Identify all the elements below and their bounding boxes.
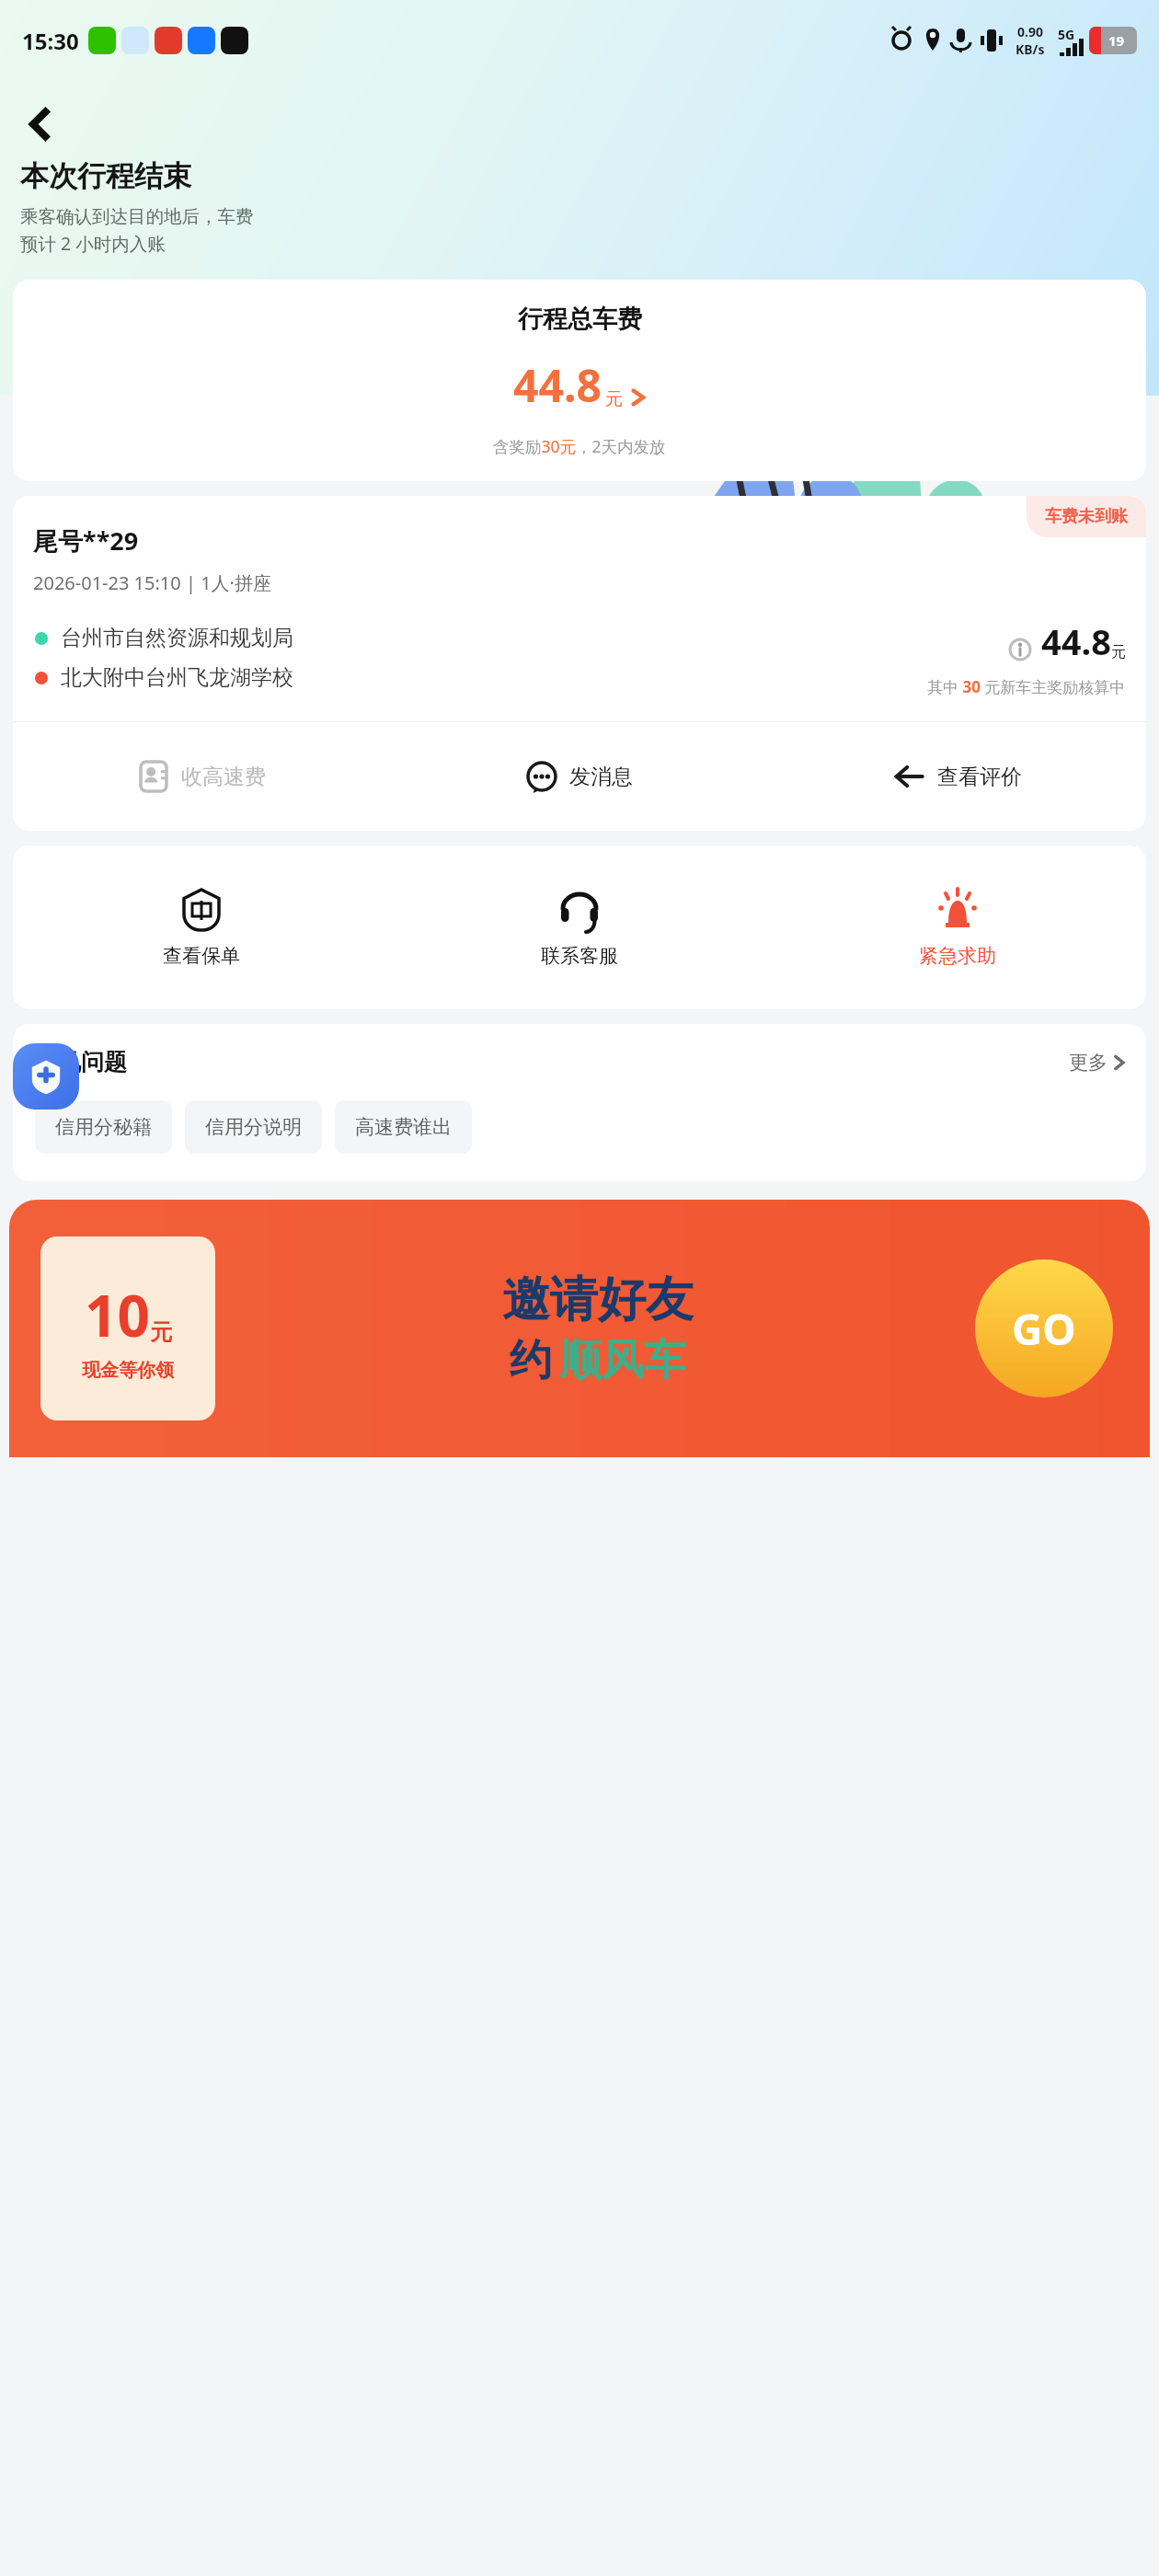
staticText: 联系客服	[541, 944, 618, 968]
button[interactable]: 安全中心	[13, 1043, 79, 1110]
staticText: 元	[1111, 643, 1126, 661]
button[interactable]: Back	[11, 96, 68, 153]
button[interactable]: 信用分秘籍	[35, 1100, 172, 1154]
button[interactable]: 查看保单	[13, 845, 390, 1009]
staticText: 行程总车费	[518, 304, 642, 335]
staticText: 15:30	[22, 26, 79, 56]
staticText: 信用分说明	[205, 1115, 302, 1139]
button[interactable]: 查看评价	[768, 722, 1146, 831]
button[interactable]: 高速费谁出	[335, 1100, 472, 1154]
staticText: 10	[85, 1276, 150, 1353]
staticText: 车费未到账	[1045, 506, 1128, 527]
staticText: 信用分秘籍	[55, 1115, 152, 1139]
staticText: 约	[510, 1334, 552, 1387]
staticText: 0.90	[1017, 23, 1043, 40]
button[interactable]: 紧急求助	[768, 845, 1146, 1009]
staticText: 44.8	[513, 355, 602, 415]
button[interactable]: 发消息	[390, 722, 768, 831]
staticText: 元	[150, 1318, 172, 1346]
staticText: GO	[1012, 1300, 1076, 1358]
staticText: 发消息	[569, 764, 633, 790]
staticText: 查看评价	[937, 764, 1022, 790]
staticText: 5G	[1058, 26, 1075, 43]
button[interactable]: 10	[9, 1200, 1150, 1457]
staticText: 常见问题	[35, 1048, 127, 1076]
button[interactable]: 收高速费	[13, 722, 390, 831]
staticText: 现金等你领	[82, 1359, 174, 1382]
staticText: 乘客确认到达目的地后，车费 预计 2 小时内入账	[20, 205, 254, 256]
staticText: 收高速费	[181, 764, 266, 790]
staticText: 北大附中台州飞龙湖学校	[61, 664, 293, 691]
staticText: 尾号**29	[33, 523, 139, 558]
staticText: 查看保单	[163, 944, 240, 968]
staticText: 其中 30 元新车主奖励核算中	[927, 676, 1126, 697]
staticText: 顺风车	[559, 1334, 686, 1387]
staticText: 邀请好友	[502, 1270, 694, 1330]
staticText: 含奖励30元，2天内发放	[493, 435, 666, 457]
staticText: 高速费谁出	[355, 1115, 452, 1139]
staticText: 本次行程结束	[20, 158, 191, 194]
staticText: 元	[605, 388, 623, 410]
staticText: 紧急求助	[919, 944, 996, 968]
button[interactable]: 信用分说明	[185, 1100, 322, 1154]
staticText: 19	[1108, 31, 1125, 50]
staticText: 44.8	[1041, 617, 1111, 665]
staticText: 2026-01-23 15:10 | 1人·拼座	[33, 570, 271, 595]
button[interactable]: 联系客服	[390, 845, 768, 1009]
button[interactable]: 行程总车费	[13, 280, 1146, 481]
button[interactable]: 更多	[1069, 1051, 1126, 1075]
staticText: 台州市自然资源和规划局	[61, 625, 293, 651]
staticText: 更多	[1069, 1051, 1107, 1075]
staticText: KB/s	[1016, 40, 1045, 58]
